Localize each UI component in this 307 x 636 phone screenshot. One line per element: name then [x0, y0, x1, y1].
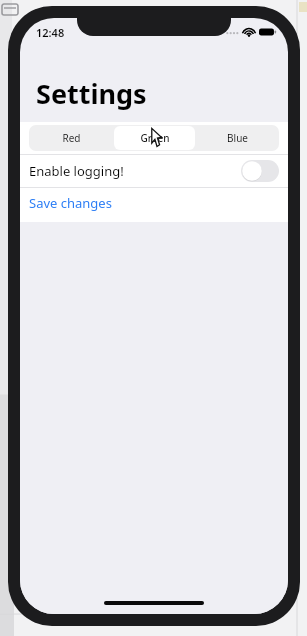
- button[interactable]: Blue: [197, 126, 278, 150]
- staticText: Green: [140, 131, 170, 145]
- staticText: Enable logging!: [29, 162, 124, 180]
- staticText: Settings: [36, 75, 147, 112]
- staticText: Blue: [227, 131, 248, 145]
- button[interactable]: Green: [114, 126, 195, 150]
- button[interactable]: Red: [30, 126, 112, 150]
- staticText: Save changes: [29, 194, 112, 212]
- button[interactable]: Enable logging!: [20, 155, 288, 187]
- button[interactable]: Save changes: [20, 188, 288, 218]
- staticText: Red: [62, 131, 81, 145]
- button[interactable]: Enable logging toggle, off: [241, 160, 279, 182]
- staticText: 12:48: [36, 25, 65, 40]
